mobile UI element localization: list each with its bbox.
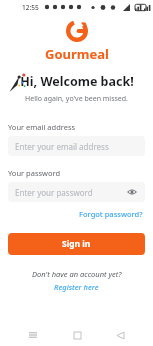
staticText: Sign in	[62, 238, 91, 250]
staticText: Enter your password	[15, 187, 126, 198]
staticText: Register here	[54, 282, 99, 292]
button[interactable]: Enter your email address	[8, 136, 145, 156]
button[interactable]: Recent apps	[22, 324, 44, 346]
staticText: Enter your email address	[15, 141, 138, 152]
button[interactable]: Back	[109, 324, 131, 346]
button[interactable]: Register here	[51, 281, 102, 293]
staticText: Don't have an account yet?	[32, 269, 122, 279]
button[interactable]: Enter your password	[8, 182, 145, 202]
button[interactable]: Sign in	[8, 233, 145, 255]
button[interactable]: Show password	[126, 186, 138, 198]
staticText: Hello again, yo've been missed.	[25, 94, 128, 104]
staticText: Forgot password?	[79, 209, 143, 219]
staticText: Your email address	[8, 122, 76, 132]
staticText: 12:55	[22, 3, 39, 12]
button[interactable]: Home	[66, 324, 88, 346]
staticText: Hi, Welcome back!	[20, 73, 134, 90]
staticText: Gourmeal	[45, 45, 109, 63]
button[interactable]: Forgot password?	[77, 207, 145, 221]
staticText: Your password	[8, 168, 61, 178]
